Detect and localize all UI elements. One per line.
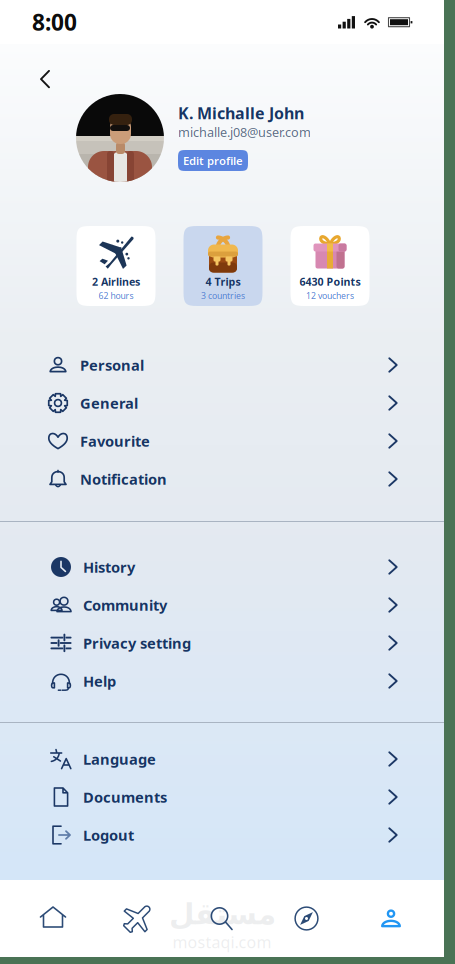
button[interactable]: Community <box>0 586 444 624</box>
button[interactable]: Flights <box>110 895 164 941</box>
button[interactable]: Personal <box>0 346 444 384</box>
button[interactable]: Privacy setting <box>0 624 444 662</box>
staticText: Privacy setting <box>83 633 191 653</box>
staticText: Language <box>83 749 156 769</box>
staticText: 2 Airlines <box>92 274 140 289</box>
staticText: 12 vouchers <box>306 290 354 301</box>
staticText: 6430 Points <box>299 274 360 289</box>
staticText: Community <box>83 595 167 615</box>
staticText: Edit profile <box>183 153 243 168</box>
button[interactable]: Notification <box>0 460 444 498</box>
staticText: 8:00 <box>32 7 77 37</box>
button[interactable]: Explore <box>279 895 333 941</box>
staticText: Help <box>83 671 116 691</box>
staticText: Notification <box>80 469 167 489</box>
staticText: K. Michalle John <box>178 102 304 124</box>
button[interactable]: 2 Airlines <box>76 226 155 306</box>
button[interactable]: Favourite <box>0 422 444 460</box>
button[interactable]: Home <box>26 895 80 941</box>
staticText: Personal <box>80 355 144 375</box>
button[interactable]: Profile <box>364 895 418 941</box>
button[interactable]: Edit profile <box>178 150 248 171</box>
staticText: Documents <box>83 787 167 807</box>
button[interactable]: Language <box>0 740 444 778</box>
button[interactable]: Documents <box>0 778 444 816</box>
staticText: مستقل <box>168 897 275 931</box>
button[interactable]: Logout <box>0 816 444 854</box>
staticText: Logout <box>83 825 134 845</box>
button[interactable]: 6430 Points <box>290 226 369 306</box>
button[interactable]: History <box>0 548 444 586</box>
button[interactable]: Help <box>0 662 444 700</box>
staticText: mostaqi.com <box>172 931 271 953</box>
staticText: 4 Trips <box>205 274 240 289</box>
staticText: michalle.j08@user.com <box>178 123 311 141</box>
staticText: General <box>80 393 138 413</box>
button[interactable]: Back <box>28 62 62 96</box>
staticText: 62 hours <box>98 290 133 301</box>
button[interactable]: 4 Trips <box>183 226 262 306</box>
staticText: History <box>83 557 135 577</box>
staticText: 3 countries <box>201 290 245 301</box>
button[interactable]: General <box>0 384 444 422</box>
button[interactable]: Search <box>195 895 249 941</box>
staticText: Favourite <box>80 431 150 451</box>
